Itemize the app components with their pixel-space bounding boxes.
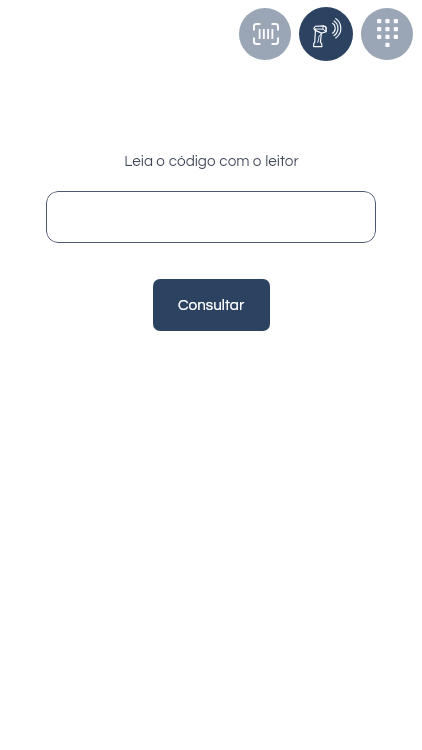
button[interactable]: Consultar bbox=[153, 279, 270, 331]
button[interactable]: Leitor de código de barras bbox=[299, 7, 353, 61]
button[interactable]: Ler código de barras bbox=[239, 8, 291, 60]
staticText: Leia o código com o leitor bbox=[124, 153, 299, 169]
staticText: Consultar bbox=[178, 297, 245, 313]
button[interactable] bbox=[46, 191, 376, 243]
button[interactable]: Teclado numérico bbox=[361, 8, 413, 60]
